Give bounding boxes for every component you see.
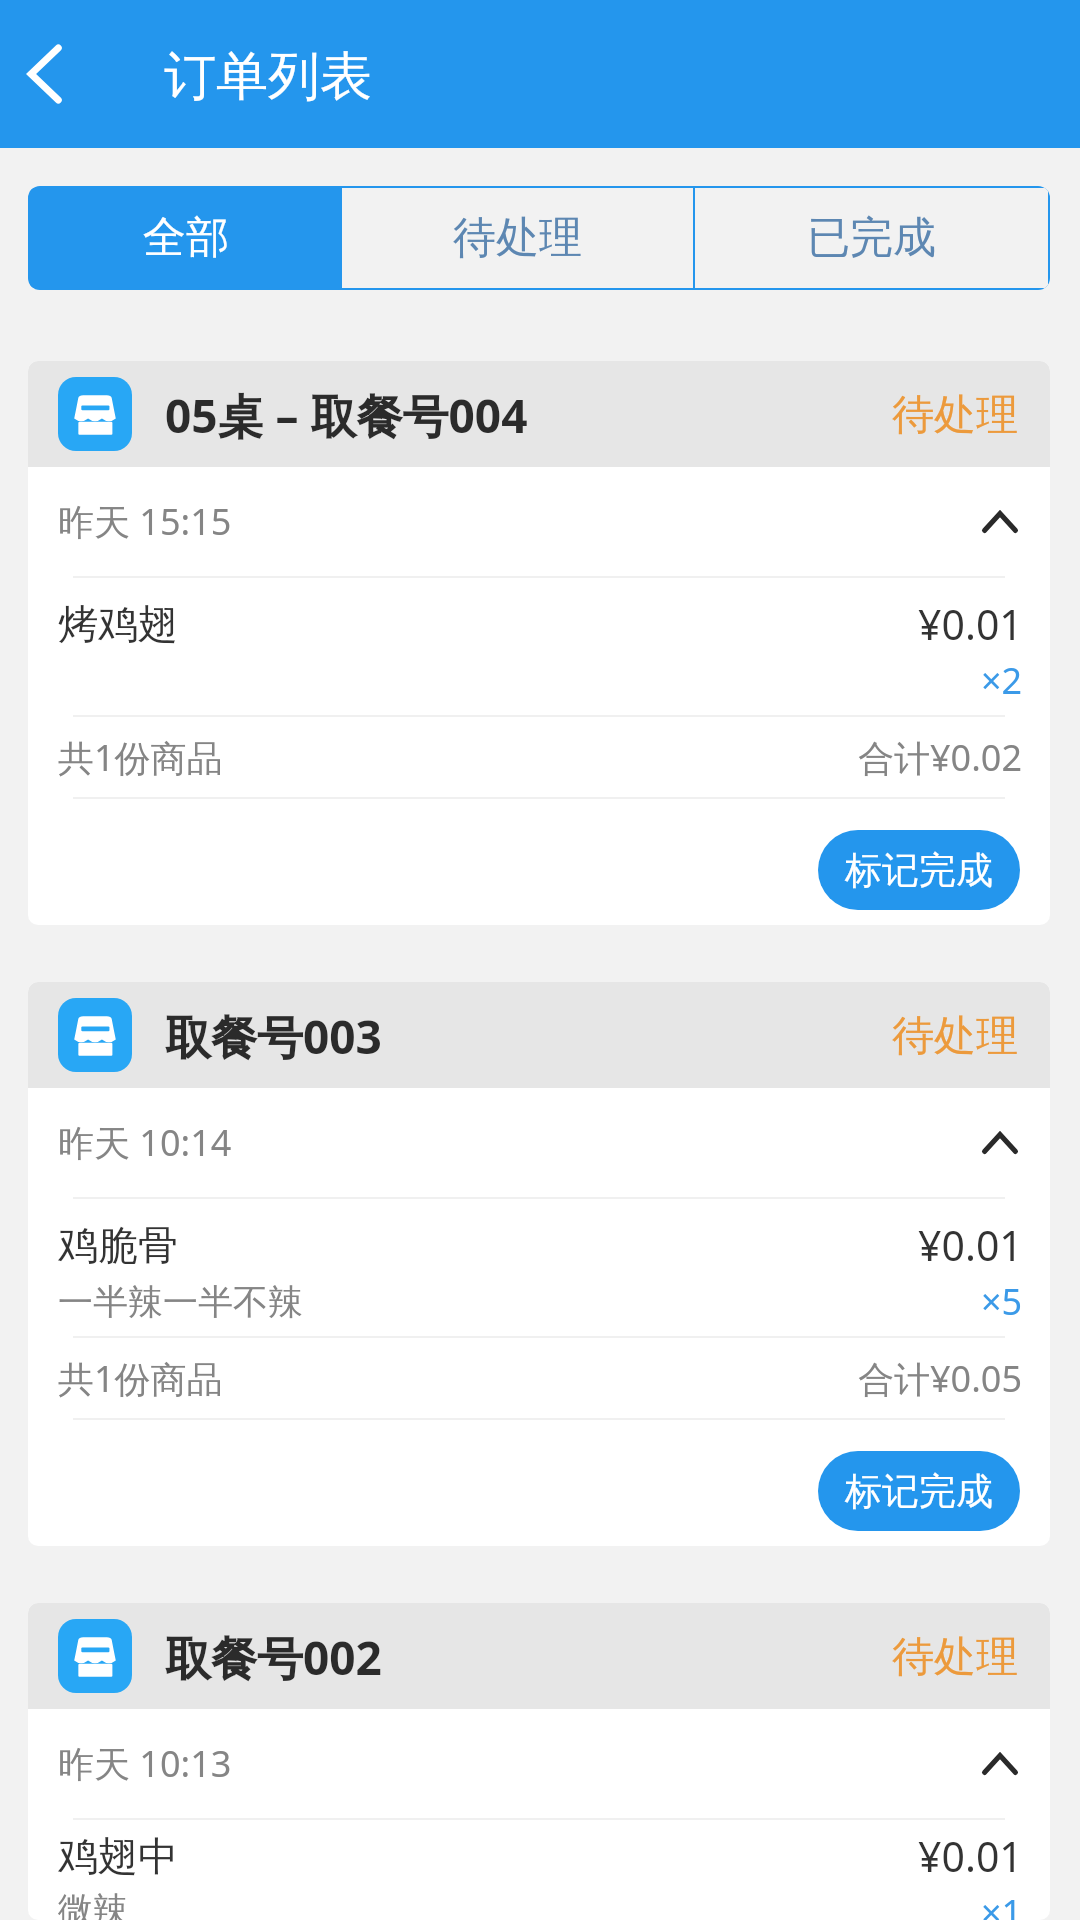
button[interactable]: 昨天 10:14 bbox=[28, 1088, 1050, 1197]
staticText: 合计¥0.05 bbox=[858, 1354, 1023, 1403]
staticText: 昨天 10:13 bbox=[58, 1739, 232, 1788]
staticText: 合计¥0.02 bbox=[858, 733, 1023, 782]
button[interactable]: 取餐号002 bbox=[28, 1603, 1050, 1709]
staticText: 一半辣一半不辣 bbox=[58, 1280, 303, 1324]
staticText: 鸡翅中 bbox=[58, 1831, 178, 1881]
button[interactable]: 05桌 – 取餐号004 bbox=[28, 361, 1050, 467]
staticText: 订单列表 bbox=[164, 44, 372, 110]
button[interactable]: 待处理 bbox=[342, 188, 693, 288]
staticText: 待处理 bbox=[892, 1631, 1018, 1684]
other: Collapse bbox=[982, 1132, 1018, 1154]
staticText: ¥0.01 bbox=[918, 1217, 1023, 1273]
button[interactable]: 取餐号003 bbox=[28, 982, 1050, 1088]
staticText: 全部 bbox=[143, 211, 229, 265]
button[interactable]: 全部 bbox=[30, 188, 341, 288]
staticText: 烤鸡翅 bbox=[58, 599, 178, 649]
button[interactable]: 标记完成 bbox=[818, 1451, 1020, 1531]
staticText: 共1份商品 bbox=[58, 733, 223, 782]
button[interactable]: 已完成 bbox=[695, 188, 1048, 288]
staticText: 待处理 bbox=[892, 389, 1018, 442]
staticText: ¥0.01 bbox=[918, 1828, 1023, 1884]
staticText: 取餐号002 bbox=[165, 1626, 382, 1689]
staticText: 标记完成 bbox=[845, 1468, 993, 1515]
staticText: 昨天 15:15 bbox=[58, 497, 232, 546]
staticText: 标记完成 bbox=[845, 847, 993, 894]
button[interactable]: 昨天 15:15 bbox=[28, 467, 1050, 576]
staticText: 微辣 bbox=[58, 1888, 128, 1920]
staticText: 鸡脆骨 bbox=[58, 1220, 178, 1270]
staticText: 已完成 bbox=[807, 211, 936, 265]
staticText: 取餐号003 bbox=[165, 1005, 382, 1068]
staticText: ¥0.01 bbox=[918, 596, 1023, 652]
staticText: 共1份商品 bbox=[58, 1354, 223, 1403]
staticText: ×1 bbox=[981, 1888, 1023, 1920]
staticText: 昨天 10:14 bbox=[58, 1118, 232, 1167]
staticText: 待处理 bbox=[892, 1010, 1018, 1063]
button[interactable]: 昨天 10:13 bbox=[28, 1709, 1050, 1818]
other: Collapse bbox=[982, 511, 1018, 533]
button[interactable]: 标记完成 bbox=[818, 830, 1020, 910]
other: Collapse bbox=[982, 1753, 1018, 1775]
staticText: ×2 bbox=[981, 656, 1023, 705]
staticText: 05桌 – 取餐号004 bbox=[165, 384, 528, 447]
staticText: ×5 bbox=[981, 1277, 1023, 1326]
staticText: 待处理 bbox=[453, 211, 582, 265]
button[interactable]: Back bbox=[0, 0, 88, 148]
